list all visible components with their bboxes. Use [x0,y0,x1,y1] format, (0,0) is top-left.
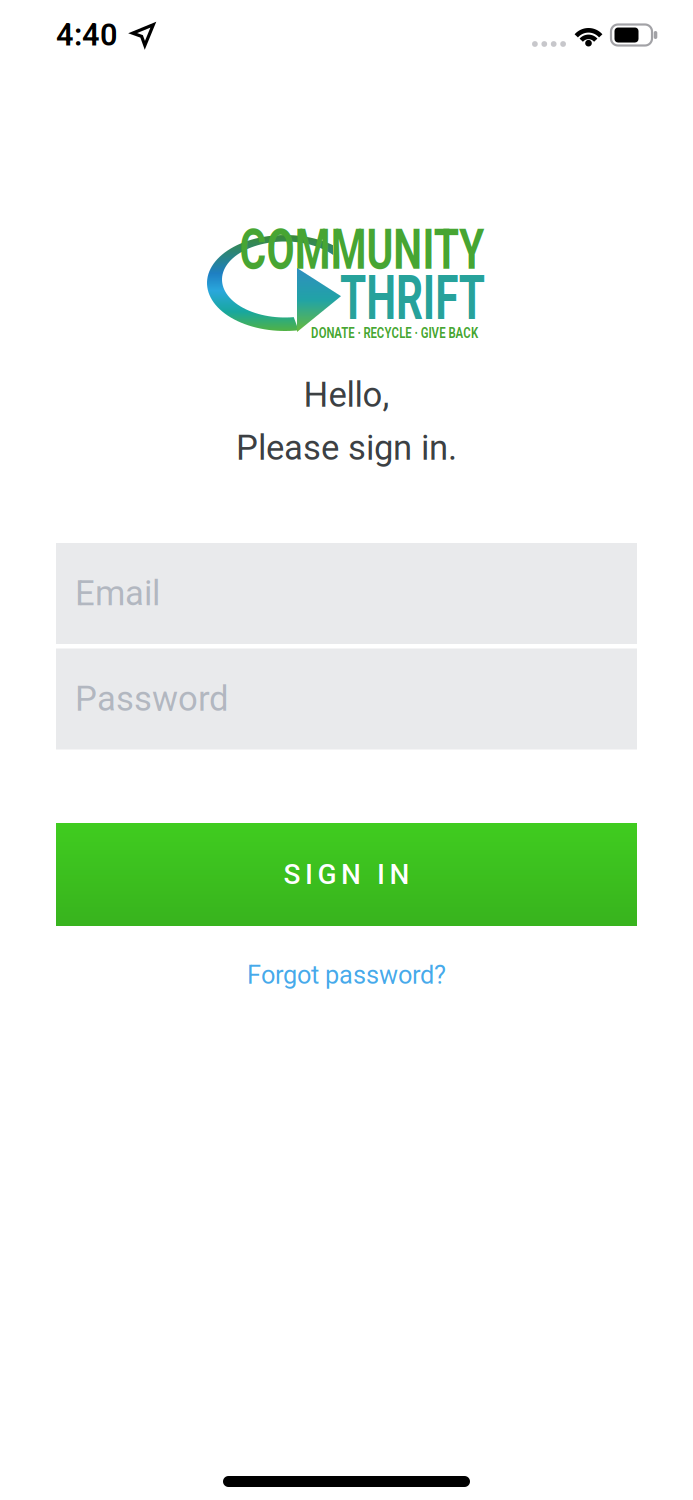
staticText: Email [75,574,160,613]
button[interactable]: S [56,823,637,926]
staticText: Forgot password? [247,960,446,989]
staticText: I [305,858,313,890]
staticText: N [389,858,409,890]
button[interactable]: Password [56,648,637,749]
staticText: COMMUNITY [198,219,526,281]
staticText: I [377,858,385,890]
button[interactable]: Email [56,543,637,644]
staticText: S [283,858,300,890]
staticText: Hello, [303,375,389,415]
staticText: Please sign in. [236,428,457,468]
staticText: DONATE · RECYCLE · GIVE BACK [286,325,502,341]
staticText: G [317,858,336,890]
staticText: Password [75,679,229,719]
button[interactable]: Forgot password? [247,960,446,989]
staticText: THRIFT [307,263,517,333]
staticText: N [341,858,361,890]
staticText: 4:40 [56,17,118,52]
